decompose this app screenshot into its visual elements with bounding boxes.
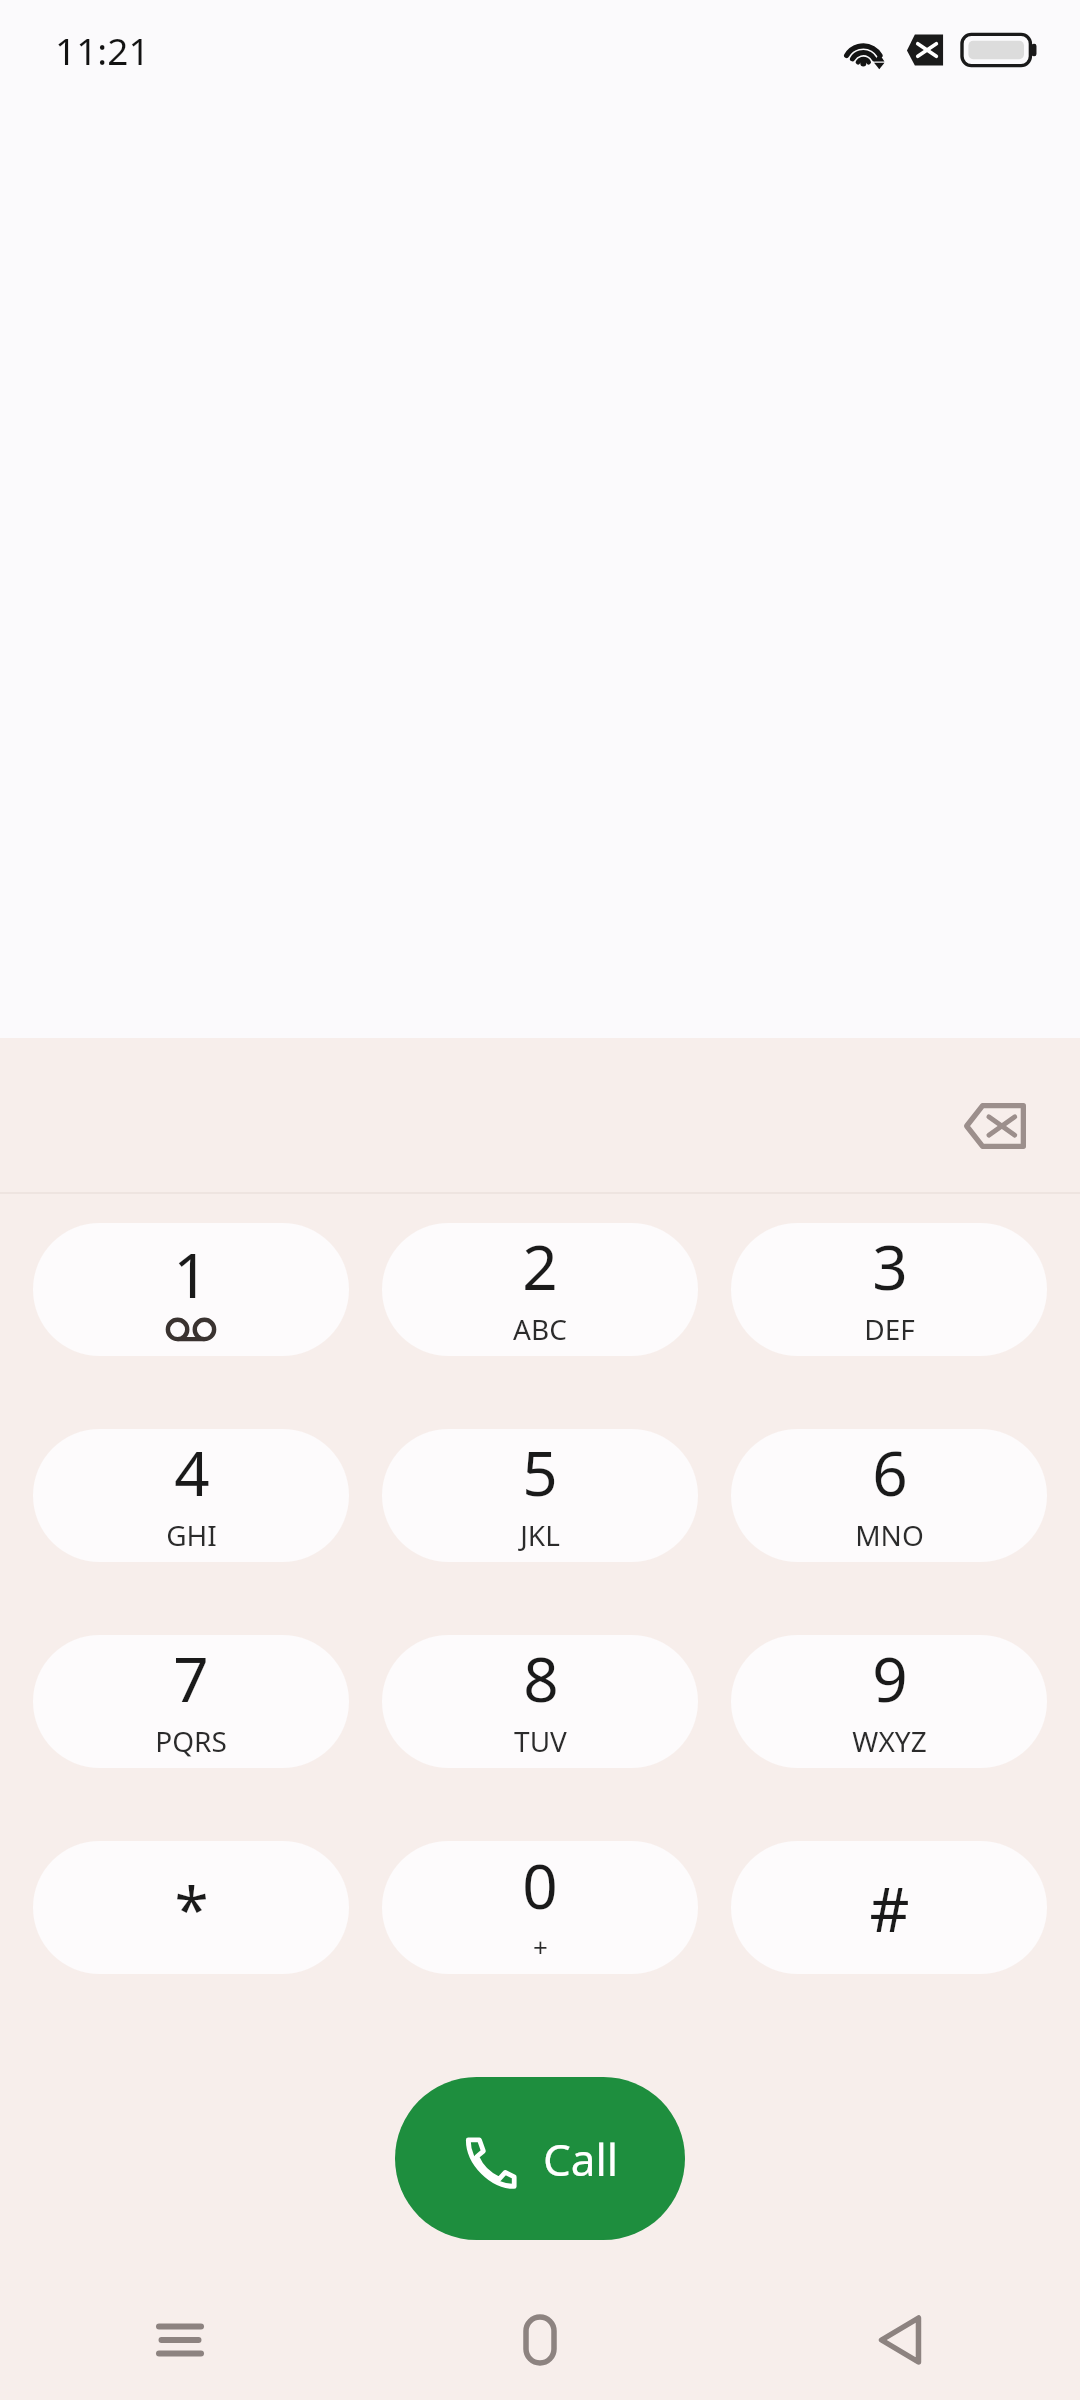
button[interactable]: 1 <box>33 1223 349 1356</box>
staticText: 6 <box>872 1430 908 1514</box>
staticText: DEF <box>864 1310 915 1348</box>
staticText: TUV <box>514 1722 567 1760</box>
staticText: 3 <box>872 1224 908 1308</box>
staticText: GHI <box>166 1516 217 1554</box>
button[interactable]: 9 <box>731 1635 1047 1768</box>
staticText: ABC <box>513 1310 567 1348</box>
staticText: 9 <box>872 1636 908 1720</box>
staticText: 2 <box>522 1224 558 1308</box>
staticText: 1 <box>173 1232 209 1316</box>
staticText: MNO <box>855 1516 924 1554</box>
button[interactable]: Backspace <box>940 1078 1050 1174</box>
staticText: + <box>533 1929 548 1964</box>
staticText: # <box>869 1866 910 1950</box>
staticText: 8 <box>523 1636 559 1720</box>
staticText: 5 <box>522 1430 558 1514</box>
button[interactable]: 8 <box>382 1635 698 1768</box>
button[interactable]: 4 <box>33 1429 349 1562</box>
button[interactable]: Recents <box>0 2280 360 2400</box>
staticText: JKL <box>520 1516 560 1554</box>
staticText: 0 <box>522 1843 558 1927</box>
staticText: 11:21 <box>55 25 150 75</box>
button[interactable]: 5 <box>382 1429 698 1562</box>
staticText: * <box>174 1866 209 1950</box>
staticText: 7 <box>173 1636 209 1720</box>
button[interactable]: Back <box>720 2280 1080 2400</box>
button[interactable]: 6 <box>731 1429 1047 1562</box>
staticText: Call <box>543 2129 619 2189</box>
button[interactable]: 7 <box>33 1635 349 1768</box>
button[interactable]: 3 <box>731 1223 1047 1356</box>
button[interactable]: Home <box>360 2280 720 2400</box>
staticText: WXYZ <box>852 1722 927 1760</box>
button[interactable]: * <box>33 1841 349 1974</box>
button[interactable]: Call <box>395 2077 685 2240</box>
button[interactable]: 2 <box>382 1223 698 1356</box>
button[interactable]: # <box>731 1841 1047 1974</box>
button[interactable]: 0 <box>382 1841 698 1974</box>
staticText: 4 <box>174 1430 210 1514</box>
staticText: PQRS <box>155 1722 227 1760</box>
